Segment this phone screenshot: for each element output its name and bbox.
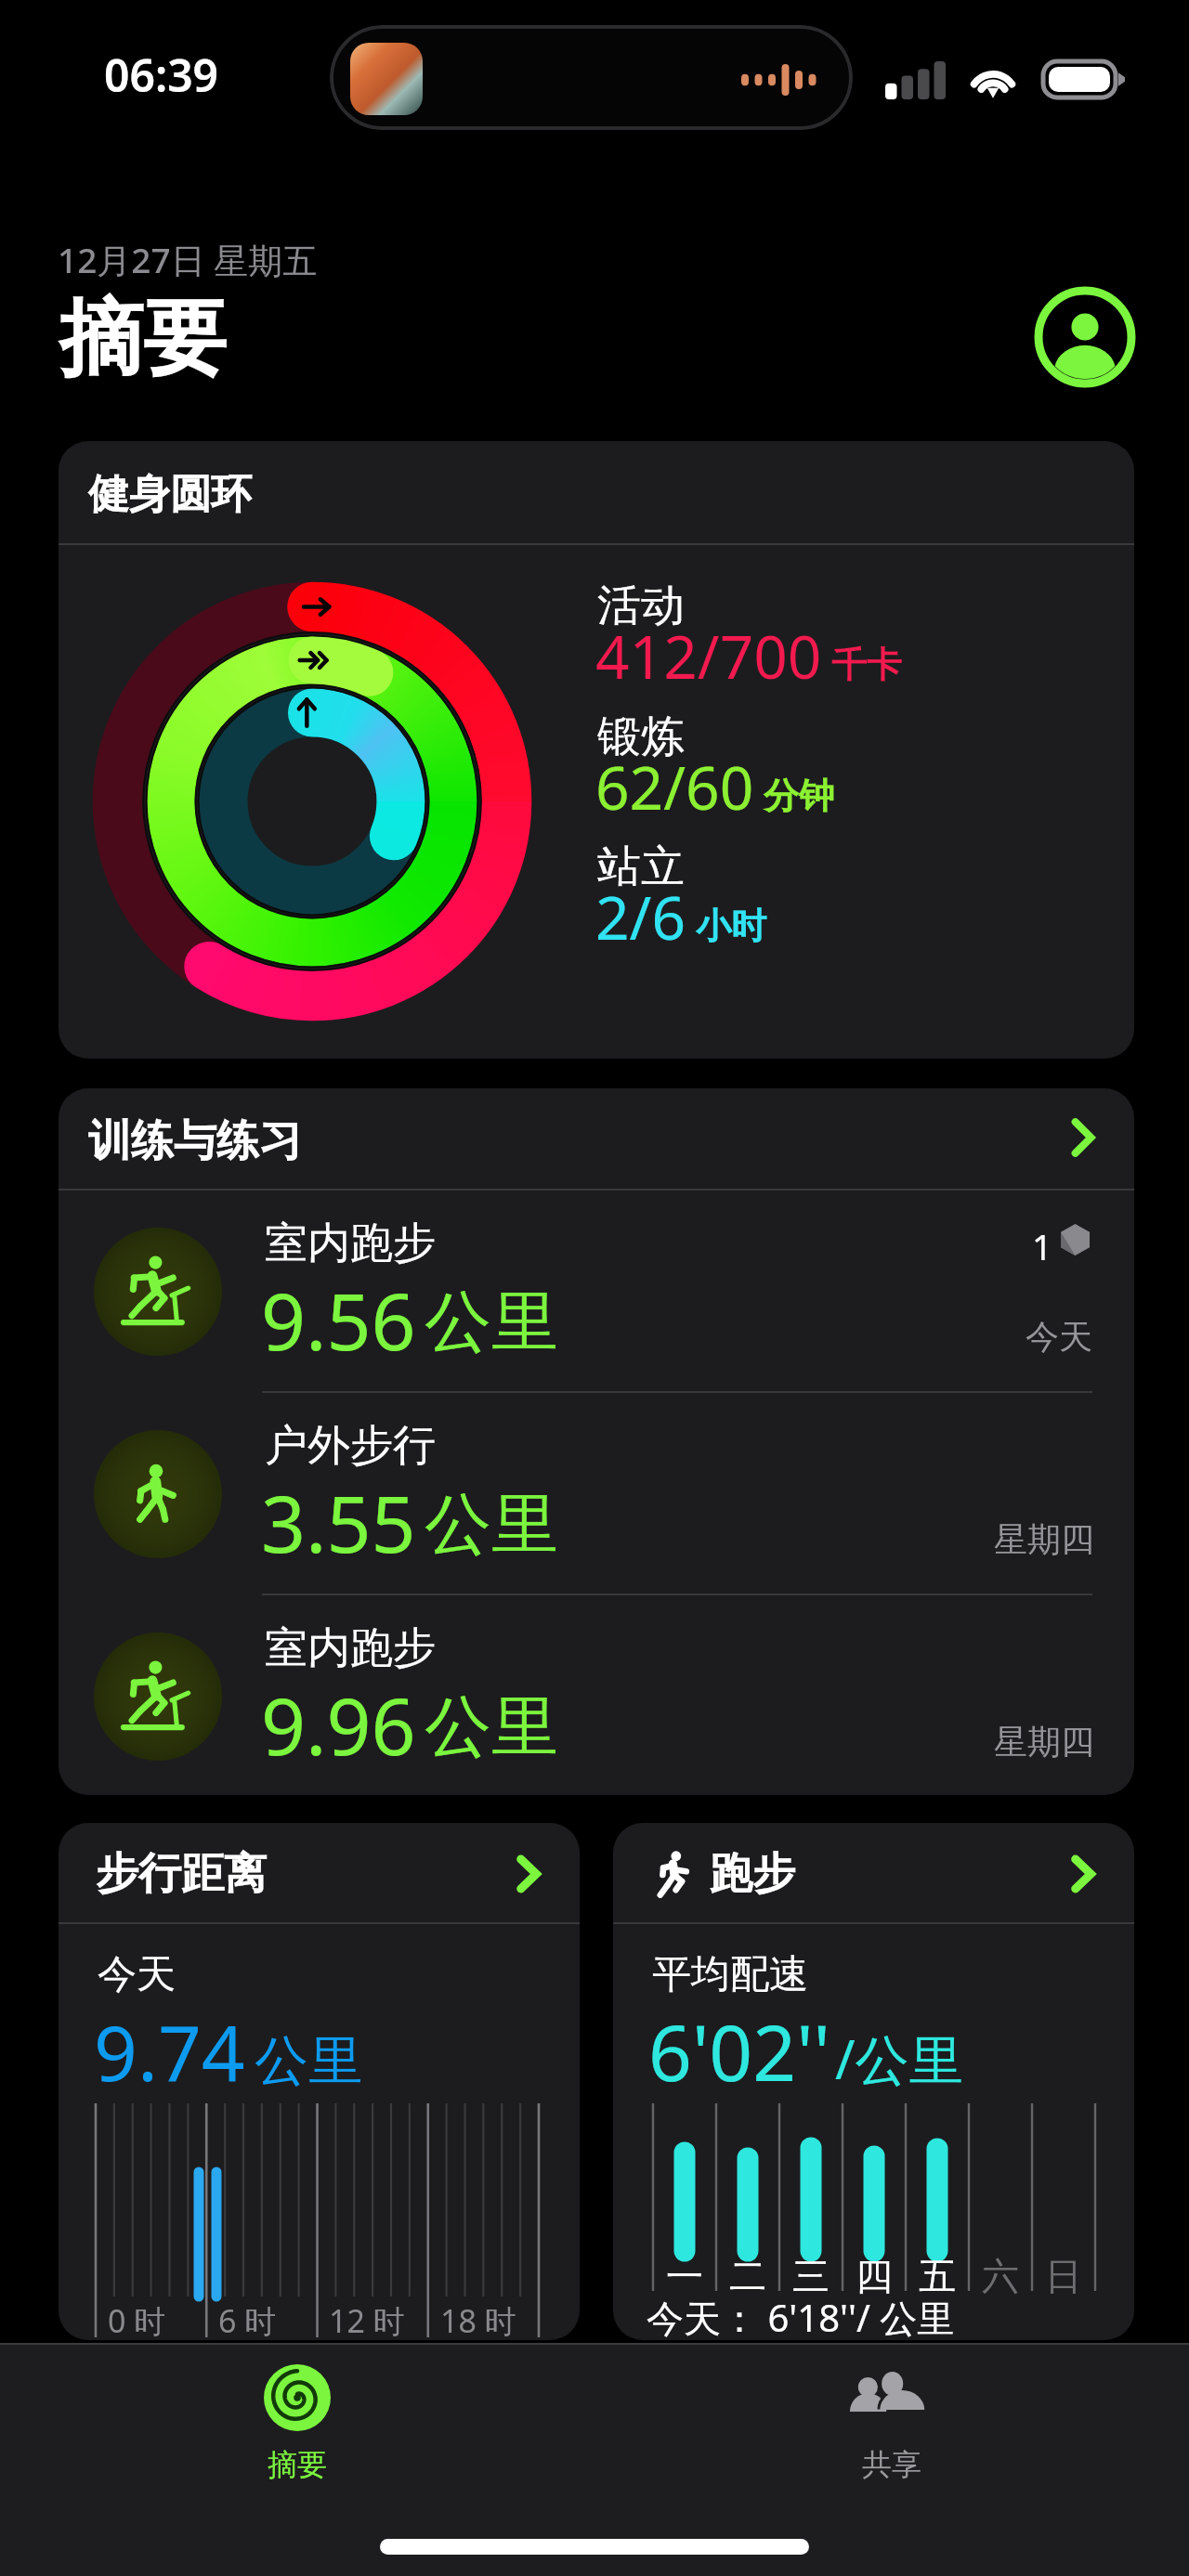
staticText: 公里: [255, 2027, 362, 2095]
staticText: 公里: [425, 1685, 558, 1770]
staticText: 共享: [862, 2446, 921, 2483]
staticText: 6'02'': [648, 1999, 831, 2103]
staticText: 今天: [98, 1950, 176, 1999]
staticText: 三: [792, 2253, 830, 2299]
staticText: 健身圆环: [88, 469, 252, 520]
button[interactable]: 共享: [808, 2367, 975, 2483]
button[interactable]: 步行距离: [59, 1823, 580, 2340]
staticText: 摘要: [59, 286, 227, 391]
staticText: 户外步行: [265, 1419, 436, 1473]
staticText: 今天: [1026, 1316, 1092, 1358]
button[interactable]: 室内跑步: [59, 1595, 1134, 1795]
staticText: 06:39: [104, 45, 219, 105]
staticText: 室内跑步: [265, 1621, 436, 1675]
staticText: 活动: [597, 579, 685, 633]
staticText: 站立: [597, 839, 685, 894]
staticText: 62/60: [595, 747, 754, 827]
button[interactable]: 跑步: [613, 1823, 1134, 2340]
button[interactable]: More workouts: [1069, 1118, 1097, 1157]
staticText: 锻炼: [597, 709, 685, 764]
staticText: 公里: [425, 1281, 558, 1365]
staticText: 摘要: [268, 2446, 327, 2483]
staticText: 四: [856, 2253, 893, 2299]
staticText: 二: [729, 2253, 766, 2299]
staticText: 公里: [425, 1483, 558, 1568]
staticText: 六: [982, 2253, 1019, 2299]
staticText: 0 时: [108, 2299, 166, 2340]
staticText: 412/700: [595, 616, 822, 696]
staticText: 步行距离: [96, 1847, 267, 1901]
staticText: 一: [666, 2253, 703, 2299]
staticText: 今天： 6'18''/ 公里: [647, 2292, 955, 2340]
staticText: 训练与练习: [88, 1114, 302, 1168]
staticText: 千卡: [831, 643, 902, 687]
staticText: 9.96: [261, 1672, 416, 1777]
staticText: 12月27日 星期五: [58, 236, 318, 283]
staticText: 小时: [696, 904, 766, 948]
button[interactable]: 户外步行: [59, 1393, 1134, 1594]
button[interactable]: Details: [516, 1856, 541, 1892]
staticText: 室内跑步: [265, 1216, 436, 1270]
staticText: 18 时: [440, 2299, 516, 2340]
staticText: /公里: [835, 2022, 963, 2095]
staticText: 3.55: [261, 1469, 416, 1575]
staticText: 12 时: [329, 2299, 405, 2340]
button[interactable]: Details: [1071, 1856, 1095, 1892]
staticText: 1: [1032, 1222, 1052, 1270]
staticText: 星期四: [994, 1518, 1094, 1560]
button[interactable]: Profile: [1034, 286, 1136, 388]
staticText: 9.74: [94, 1999, 245, 2103]
staticText: 五: [919, 2253, 956, 2299]
staticText: 日: [1045, 2253, 1082, 2299]
button[interactable]: 摘要: [214, 2364, 381, 2483]
button[interactable]: 室内跑步: [59, 1190, 1134, 1391]
staticText: 9.56: [261, 1267, 416, 1373]
staticText: 平均配速: [652, 1950, 808, 1999]
staticText: 星期四: [994, 1721, 1094, 1763]
staticText: 6 时: [218, 2299, 277, 2340]
button[interactable]: 训练与练习: [59, 1088, 1134, 1189]
staticText: 2/6: [595, 877, 686, 957]
staticText: 分钟: [764, 774, 834, 818]
button[interactable]: 健身圆环: [59, 441, 1134, 1059]
staticText: 跑步: [710, 1847, 795, 1901]
